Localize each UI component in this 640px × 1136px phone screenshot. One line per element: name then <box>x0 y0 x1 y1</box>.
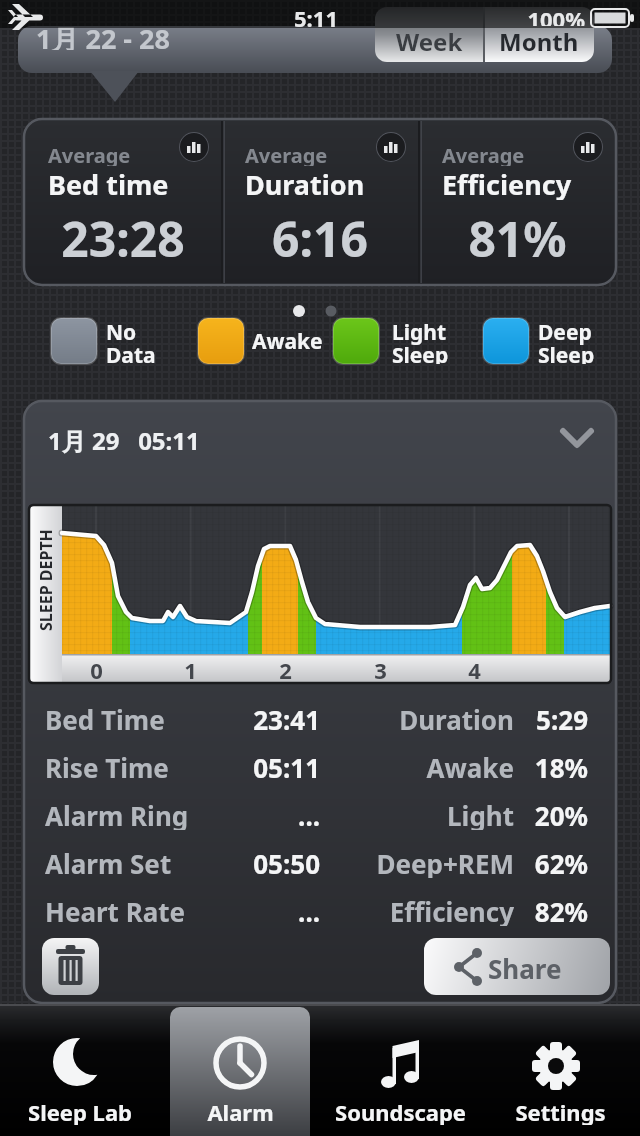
staticText: Share <box>488 951 562 981</box>
staticText: Light Sleep <box>392 318 449 364</box>
button[interactable]: Week <box>375 7 484 62</box>
staticText: Week <box>396 25 463 58</box>
staticText: 81% <box>468 206 567 262</box>
staticText: 6:16 <box>272 206 368 262</box>
button[interactable] <box>480 1004 640 1136</box>
staticText: 23:28 <box>61 206 185 262</box>
staticText: Duration <box>399 702 514 734</box>
staticText: Alarm Ring <box>45 798 189 830</box>
staticText: Alarm Set <box>45 846 172 878</box>
staticText: 62% <box>534 846 588 878</box>
button[interactable] <box>376 132 406 162</box>
staticText: 1月 29 05:11 <box>48 424 200 454</box>
staticText: ... <box>298 894 320 926</box>
staticText: SLEEP DEPTH <box>35 529 57 631</box>
staticText: No Data <box>106 318 156 364</box>
staticText: 1月 22 - 28 <box>36 20 170 50</box>
staticText: Deep Sleep <box>538 318 595 364</box>
button[interactable] <box>24 401 616 473</box>
staticText: Bed Time <box>45 702 165 734</box>
staticText: Average <box>442 142 525 166</box>
staticText: ... <box>298 798 320 830</box>
staticText: 5:11 <box>294 3 338 27</box>
staticText: Duration <box>245 166 365 200</box>
staticText: 20% <box>534 798 588 830</box>
staticText: Efficiency <box>442 166 572 200</box>
staticText: Soundscape <box>335 1097 466 1125</box>
staticText: 23:41 <box>253 702 320 734</box>
button[interactable] <box>573 132 603 162</box>
staticText: 5:29 <box>536 702 588 734</box>
button[interactable] <box>179 132 209 162</box>
button[interactable] <box>160 1004 320 1136</box>
button[interactable]: Share <box>424 938 610 995</box>
staticText: 05:50 <box>253 846 320 878</box>
staticText: Average <box>245 142 328 166</box>
staticText: 82% <box>534 894 588 926</box>
staticText: Awake <box>252 327 323 356</box>
staticText: Awake <box>426 750 514 782</box>
staticText: Sleep Lab <box>28 1097 132 1125</box>
staticText: Settings <box>515 1097 606 1125</box>
staticText: Heart Rate <box>45 894 186 926</box>
staticText: Alarm <box>207 1097 274 1125</box>
staticText: Bed time <box>48 166 169 200</box>
button[interactable] <box>0 1004 160 1136</box>
staticText: 1 <box>184 655 197 681</box>
button[interactable] <box>320 1004 480 1136</box>
staticText: Average <box>48 142 131 166</box>
staticText: 100% <box>527 4 585 26</box>
staticText: Deep+REM <box>376 846 514 878</box>
button[interactable]: Month <box>484 7 594 62</box>
staticText: Efficiency <box>389 894 514 926</box>
staticText: 18% <box>534 750 588 782</box>
staticText: 4 <box>468 655 481 681</box>
staticText: 0 <box>90 655 103 681</box>
button[interactable] <box>42 938 99 995</box>
staticText: 2 <box>279 655 292 681</box>
staticText: Month <box>499 25 579 58</box>
staticText: 3 <box>374 655 387 681</box>
staticText: 05:11 <box>253 750 320 782</box>
staticText: Rise Time <box>45 750 169 782</box>
staticText: Light <box>447 798 514 830</box>
